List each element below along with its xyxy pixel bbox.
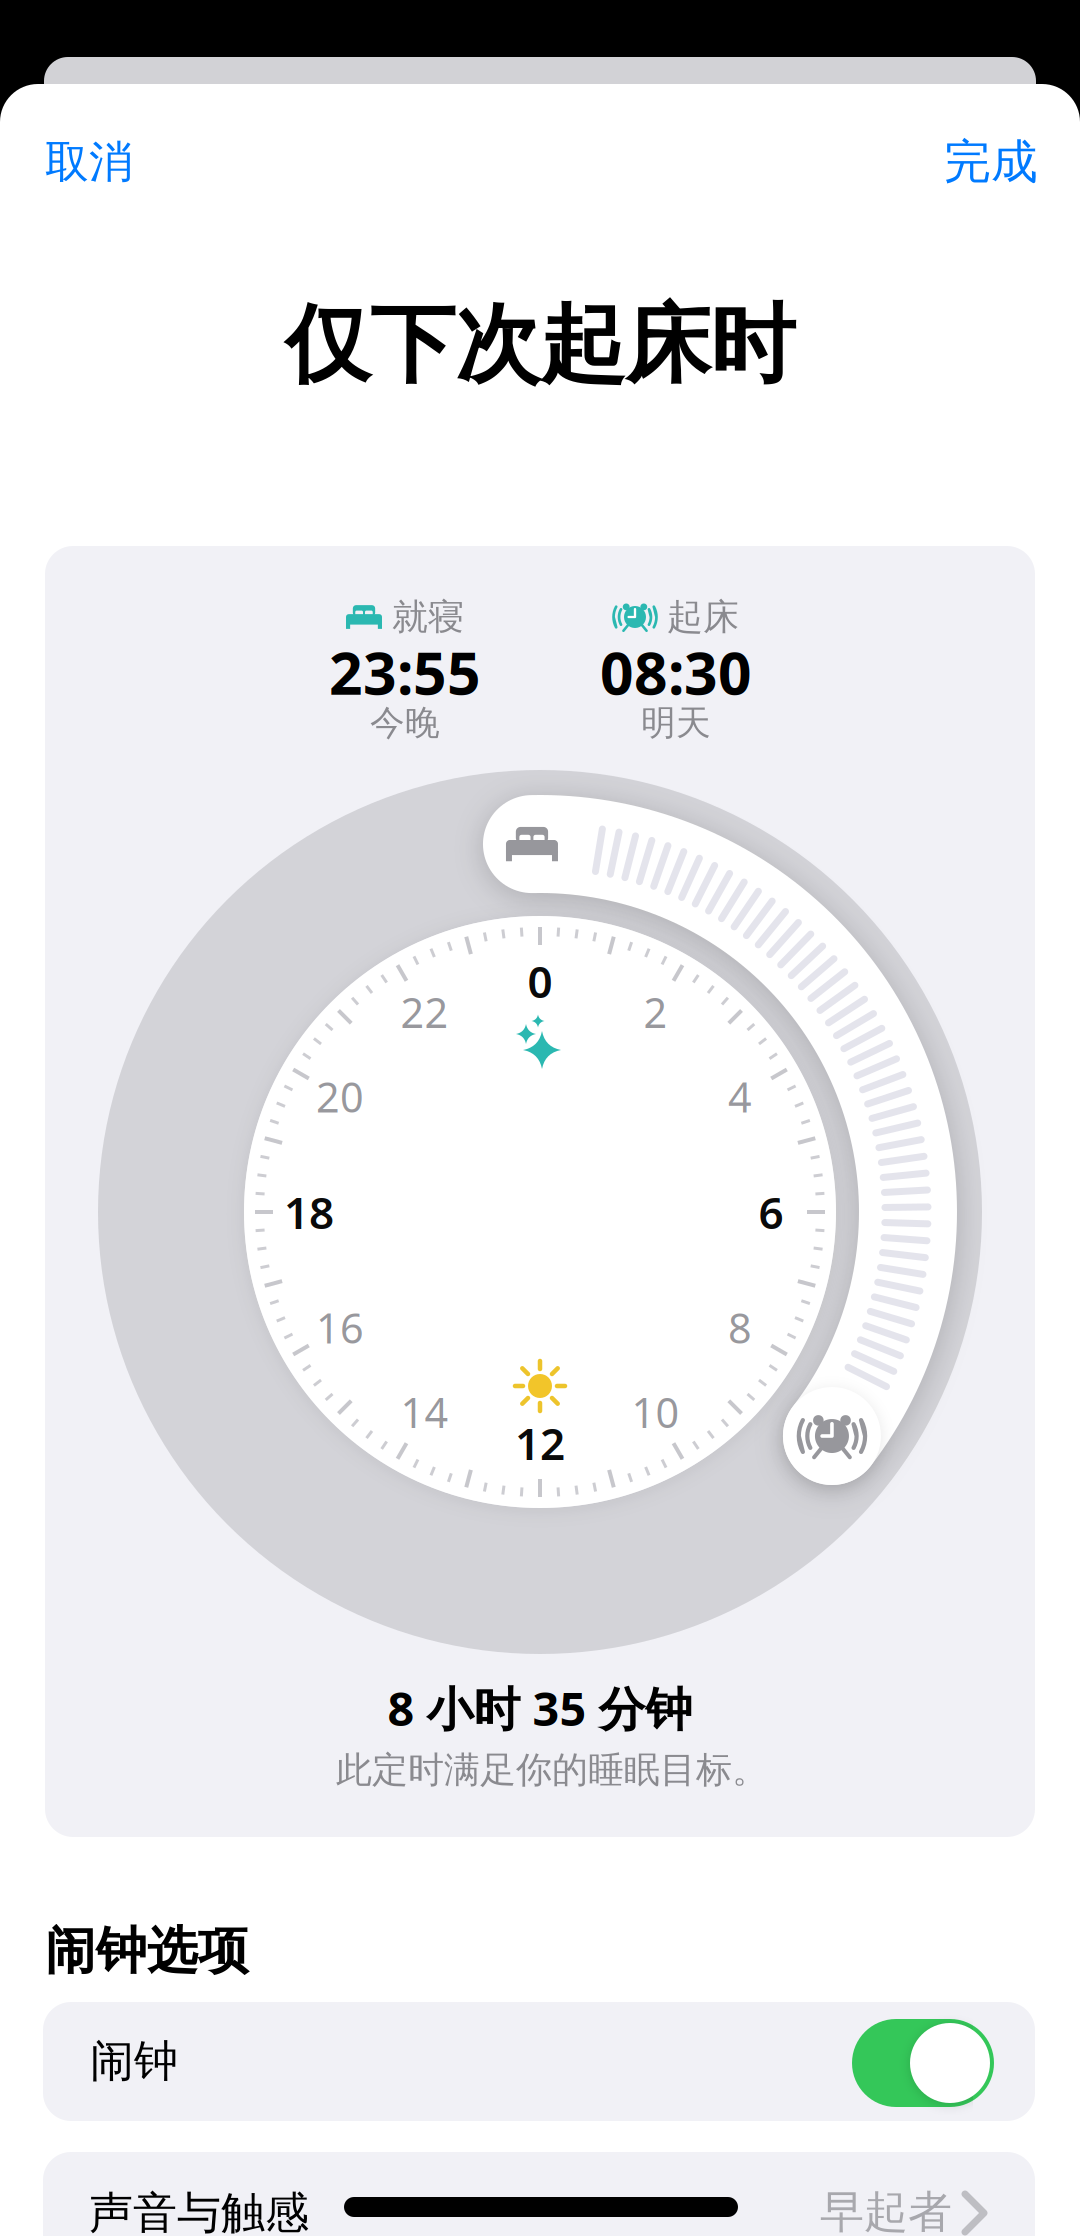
staticText: 闹钟 [90,2034,178,2088]
staticText: 18 [284,1183,334,1241]
button[interactable]: 声音与触感 [43,2152,1035,2236]
staticText: 8 小时 35 分钟 [387,1677,692,1739]
staticText: 14 [400,1385,448,1439]
staticText: 声音与触感 [89,2186,309,2236]
button[interactable]: 闹钟 [852,2019,994,2107]
staticText: 就寝 [392,595,464,639]
staticText: 2 [643,984,667,1039]
staticText: 此定时满足你的睡眠目标。 [336,1748,768,1792]
staticText: 取消 [45,135,133,189]
button[interactable]: 取消 [45,135,133,189]
staticText: 8 [728,1300,752,1355]
staticText: 23:55 [329,633,481,711]
staticText: 4 [728,1069,752,1124]
staticText: 仅下次起床时 [285,293,795,397]
staticText: 22 [400,984,448,1039]
staticText: 6 [758,1183,783,1241]
staticText: 闹钟选项 [45,1920,249,1982]
staticText: 20 [316,1069,364,1124]
staticText: 0 [527,952,552,1010]
staticText: 08:30 [600,633,752,711]
staticText: 16 [316,1300,364,1355]
staticText: 12 [515,1414,565,1472]
staticText: 明天 [641,702,711,744]
staticText: 今晚 [370,702,440,744]
staticText: 起床 [667,595,739,639]
button[interactable]: 完成 [944,133,1038,191]
staticText: 完成 [944,133,1038,191]
staticText: 10 [631,1385,679,1439]
staticText: 早起者 [820,2185,952,2236]
